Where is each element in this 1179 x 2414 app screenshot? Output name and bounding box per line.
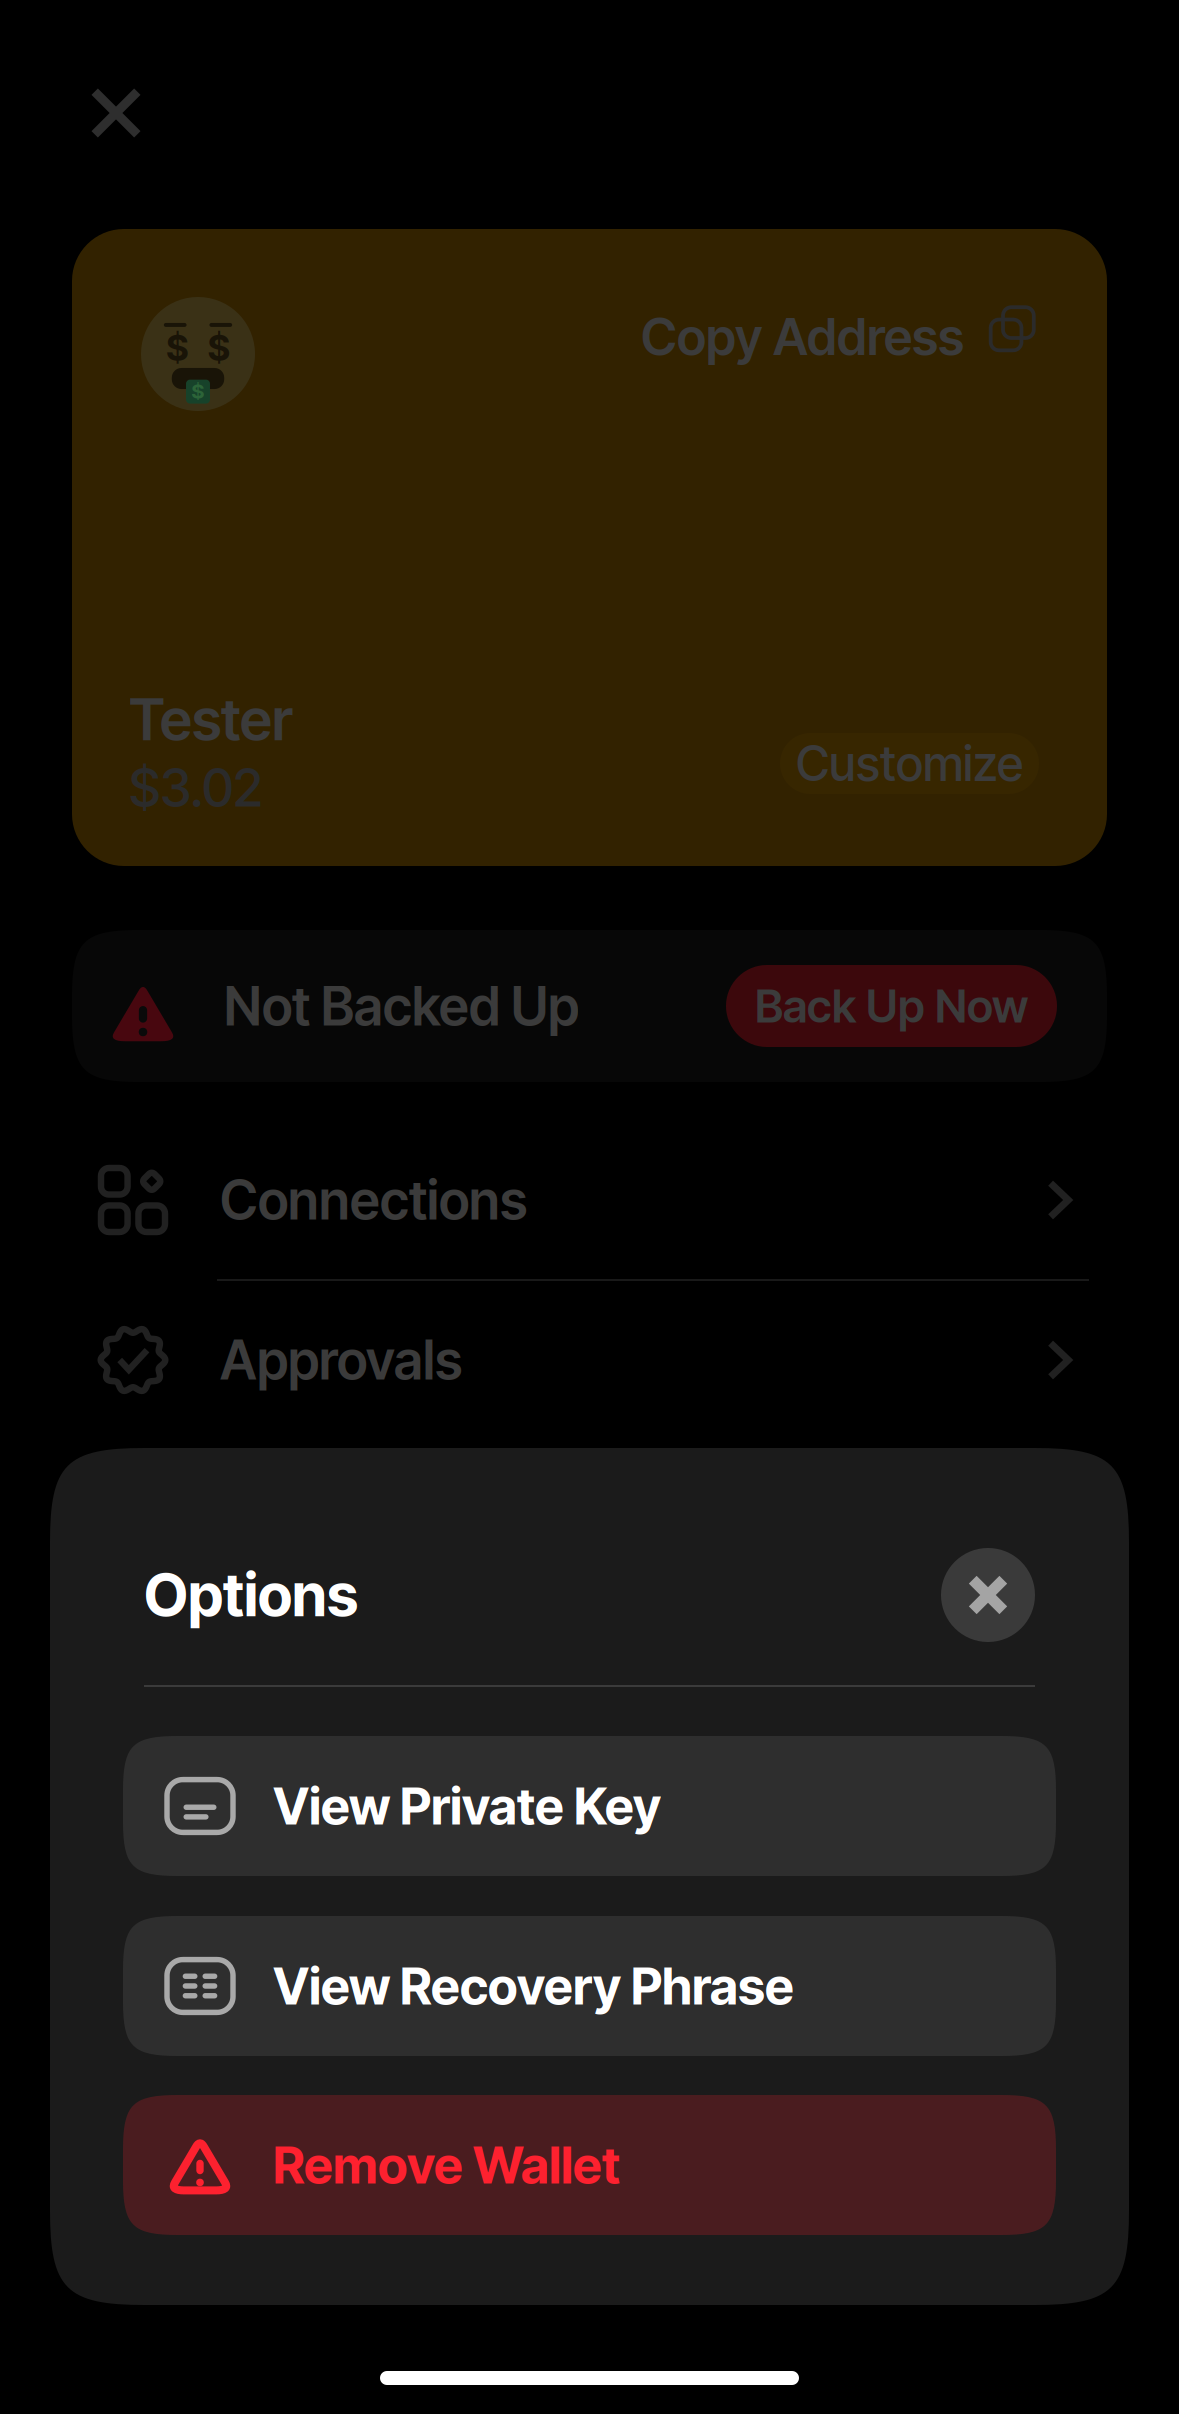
button[interactable]: View Private Key [123,1736,1056,1876]
button[interactable]: Remove Wallet [123,2095,1056,2235]
staticText: Customize [796,734,1023,793]
staticText: Connections [220,1168,527,1232]
staticText: $ [208,326,230,369]
button[interactable]: View Recovery Phrase [123,1916,1056,2056]
staticText: Remove Wallet [273,2134,620,2196]
button[interactable]: Connections [72,1121,1107,1279]
button[interactable]: $ [72,229,1107,866]
staticText: Approvals [220,1328,462,1392]
staticText: Not Backed Up [224,974,579,1038]
staticText: $3.02 [129,756,263,819]
staticText: $ [191,379,204,403]
button[interactable]: Close [69,66,163,160]
button[interactable]: Close options [941,1548,1035,1642]
button[interactable]: Back Up Now [726,965,1057,1047]
staticText: Copy Address [641,306,964,367]
staticText: $ [166,326,188,369]
button[interactable]: Approvals [72,1281,1107,1439]
staticText: Options [144,1559,358,1630]
staticText: View Private Key [273,1775,661,1837]
staticText: View Recovery Phrase [273,1955,794,2017]
staticText: Back Up Now [755,979,1028,1033]
staticText: Tester [129,685,293,754]
